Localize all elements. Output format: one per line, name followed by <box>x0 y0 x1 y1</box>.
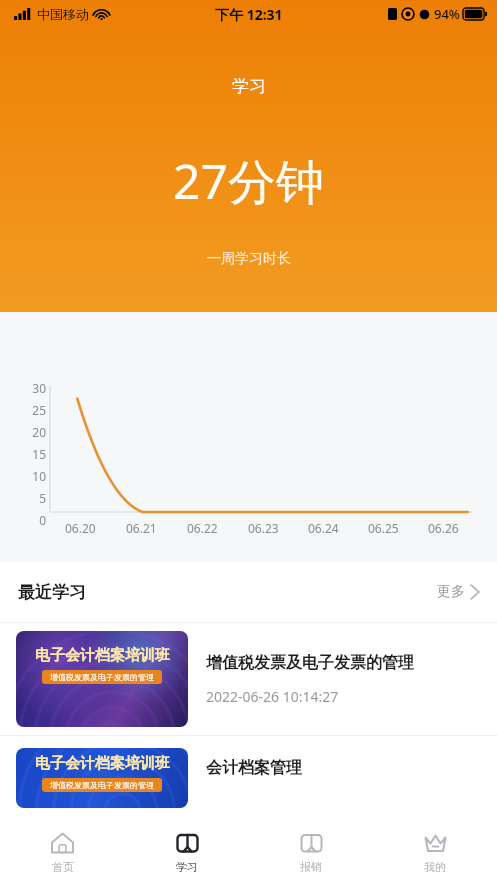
button[interactable]: 我的 <box>373 821 497 883</box>
staticText: 一周学习时长 <box>207 250 291 268</box>
staticText: 增值税发票及电子发票的管理 <box>50 780 154 790</box>
staticText: 06.24 <box>308 520 339 536</box>
staticText: 06.23 <box>248 520 279 536</box>
staticText: 下午 12:31 <box>215 5 283 24</box>
staticText: 0 <box>39 512 46 528</box>
staticText: 报销 <box>300 860 322 874</box>
staticText: 学习 <box>176 860 198 874</box>
staticText: 增值税发票及电子发票的管理 <box>206 653 414 673</box>
button[interactable]: 报销 <box>249 821 373 883</box>
button[interactable]: 电子会计档案培训班 <box>0 623 497 735</box>
staticText: 中国移动 <box>37 6 89 22</box>
staticText: 学习 <box>232 76 266 97</box>
staticText: 最近学习 <box>18 582 86 603</box>
staticText: 5 <box>39 490 46 506</box>
staticText: 2022-06-26 10:14:27 <box>206 687 339 706</box>
button[interactable]: 最近学习 <box>0 562 497 622</box>
staticText: 06.25 <box>368 520 399 536</box>
staticText: 增值税发票及电子发票的管理 <box>50 672 154 682</box>
staticText: 27分钟 <box>173 148 324 214</box>
staticText: 25 <box>32 402 46 418</box>
button[interactable]: 首页 <box>0 821 125 883</box>
staticText: 首页 <box>52 860 74 874</box>
staticText: 06.22 <box>187 520 218 536</box>
staticText: 20 <box>32 424 46 440</box>
button[interactable]: 学习 <box>125 821 249 883</box>
staticText: 10 <box>32 468 46 484</box>
staticText: 06.21 <box>126 520 157 536</box>
staticText: 15 <box>32 446 46 462</box>
staticText: 电子会计档案培训班 <box>35 754 170 773</box>
staticText: 94% <box>434 5 460 23</box>
staticText: 更多 <box>437 583 465 601</box>
staticText: 06.26 <box>428 520 459 536</box>
staticText: 我的 <box>424 860 446 874</box>
staticText: 电子会计档案培训班 <box>35 646 170 665</box>
staticText: 06.20 <box>65 520 96 536</box>
staticText: 30 <box>32 380 46 396</box>
staticText: 会计档案管理 <box>206 758 302 778</box>
button[interactable]: 电子会计档案培训班 <box>0 736 497 808</box>
